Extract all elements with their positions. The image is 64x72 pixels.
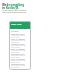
staticText: Lorem ipsum dolor sit amet consect [11,35,29,38]
button[interactable]: Compose for Web [11,43,29,48]
staticText: Web compiling in Kotlin/JS [2,3,25,10]
staticText: Compose for Web [11,33,25,35]
button[interactable]: Kotlin 1.6 released [11,58,29,63]
staticText: Lorem ipsum dolor sit amet consect [11,55,29,58]
staticText: Kotlin 1.6 released [11,58,25,60]
staticText: Kotlin 1.6 released [11,48,25,50]
staticText: Compose for Web [11,63,25,65]
button[interactable]: Web compiling in Kotlin/JS [2,3,64,14]
staticText: Compose for Web [11,43,25,45]
staticText: Kotlin 1.6 released [11,38,25,40]
staticText: Lorem ipsum dolor sit amet consect [11,40,29,43]
staticText: Kotlin News [11,23,22,26]
staticText: Lorem ipsum dolor sit amet consect [11,65,29,68]
button[interactable]: Kotlin 1.6 released [11,38,29,43]
button[interactable]: Compose for Web [11,33,29,38]
staticText: All articles [11,30,19,32]
button[interactable]: Kotlin 1.6 released [11,48,29,53]
staticText: Lorem ipsum dolor sit amet, consectetuer… [2,9,34,13]
button[interactable]: Kotlin News [9,21,31,29]
button[interactable]: Compose for Web [11,53,29,58]
staticText: Lorem ipsum dolor sit amet consect [11,45,29,48]
staticText: Lorem ipsum dolor sit amet consect [11,60,29,63]
staticText: Lorem ipsum dolor sit amet consect [11,50,29,53]
button[interactable]: Compose for Web [11,63,29,68]
staticText: Compose for Web [11,53,25,55]
